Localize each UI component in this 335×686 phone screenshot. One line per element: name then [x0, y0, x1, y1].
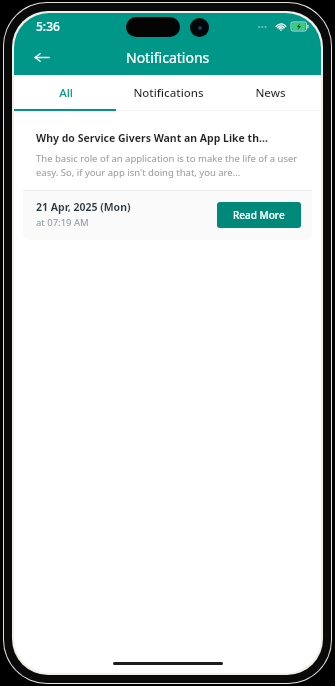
staticText: Notifications — [133, 85, 204, 101]
staticText: 5:36 — [36, 18, 60, 34]
staticText: Read More — [233, 208, 285, 222]
button[interactable]: Read More — [217, 202, 301, 228]
staticText: Notifications — [126, 48, 210, 67]
staticText: All — [59, 85, 73, 101]
staticText: Why do Service Givers Want an App Like t… — [36, 131, 268, 145]
staticText: The basic role of an application is to m… — [36, 152, 299, 179]
button[interactable]: All — [14, 75, 117, 111]
button[interactable]: Why do Service Givers Want an App Like t… — [23, 120, 312, 240]
staticText: News — [255, 85, 286, 101]
button[interactable]: Back — [26, 42, 56, 72]
staticText: 21 Apr, 2025 (Mon) — [36, 200, 131, 214]
staticText: at 07:19 AM — [36, 216, 89, 229]
button[interactable]: News — [219, 75, 321, 111]
button[interactable]: Notifications — [117, 75, 219, 111]
